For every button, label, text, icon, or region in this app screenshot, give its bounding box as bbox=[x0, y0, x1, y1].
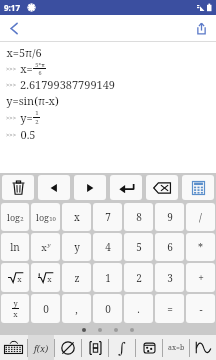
button[interactable]: y bbox=[62, 233, 91, 261]
button[interactable]: 3 bbox=[155, 263, 184, 292]
button[interactable]: x bbox=[31, 233, 60, 261]
staticText: . bbox=[137, 302, 140, 316]
staticText: ∫ bbox=[118, 339, 126, 356]
button[interactable]: 9 bbox=[155, 203, 184, 231]
staticText: 0.5 bbox=[20, 127, 36, 142]
staticText: >>> bbox=[6, 131, 17, 139]
button[interactable]: Integral bbox=[109, 335, 135, 360]
staticText: y bbox=[47, 241, 51, 249]
button[interactable]: 7 bbox=[93, 203, 122, 231]
button[interactable]: 0 bbox=[31, 294, 60, 323]
staticText: 9 bbox=[167, 210, 173, 224]
button[interactable]: Functions bbox=[28, 335, 54, 360]
button[interactable]: 4 bbox=[93, 233, 122, 261]
button[interactable]: 1 bbox=[93, 263, 122, 292]
staticText: = bbox=[167, 302, 173, 316]
staticText: - bbox=[199, 302, 203, 316]
button[interactable]: 6 bbox=[155, 233, 184, 261]
button[interactable]: x bbox=[31, 263, 60, 292]
staticText: 2 bbox=[35, 118, 39, 126]
staticText: x= bbox=[20, 61, 33, 76]
button[interactable]: , bbox=[62, 294, 91, 323]
staticText: f(x) bbox=[34, 342, 49, 354]
staticText: x bbox=[41, 241, 47, 254]
staticText: 7 bbox=[105, 210, 111, 224]
button[interactable]: Backspace bbox=[146, 175, 178, 200]
staticText: 1 bbox=[105, 271, 111, 285]
button[interactable]: Graph bbox=[190, 335, 216, 360]
button[interactable]: Keyboard bbox=[0, 335, 27, 360]
button[interactable]: Calculator bbox=[182, 175, 214, 200]
button[interactable]: / bbox=[186, 203, 215, 231]
staticText: x=5π/6 bbox=[6, 45, 42, 60]
staticText: y bbox=[13, 298, 18, 308]
button[interactable]: 2 bbox=[124, 263, 153, 292]
staticText: 6 bbox=[38, 69, 42, 76]
staticText: / bbox=[199, 210, 202, 224]
button[interactable]: Back bbox=[8, 22, 21, 35]
button[interactable]: = bbox=[155, 294, 184, 323]
staticText: 3 bbox=[167, 271, 173, 285]
staticText: 6 bbox=[167, 240, 173, 254]
staticText: ln bbox=[10, 240, 20, 254]
button[interactable]: Move right bbox=[74, 175, 106, 200]
staticText: z bbox=[74, 271, 80, 285]
staticText: x bbox=[13, 309, 18, 319]
button[interactable]: . bbox=[124, 294, 153, 323]
staticText: log bbox=[36, 211, 49, 223]
staticText: 2 bbox=[20, 215, 24, 223]
staticText: 9:17 bbox=[4, 2, 20, 13]
staticText: ax=b bbox=[168, 343, 185, 353]
staticText: y=sin(π-x) bbox=[6, 93, 59, 108]
button[interactable]: Share bbox=[195, 22, 208, 35]
button[interactable]: x bbox=[1, 263, 29, 292]
staticText: 5 bbox=[136, 240, 142, 254]
button[interactable]: y bbox=[1, 294, 29, 323]
button[interactable]: + bbox=[186, 263, 215, 292]
button[interactable]: Empty set bbox=[55, 335, 81, 360]
staticText: 5*π bbox=[35, 61, 45, 68]
staticText: y bbox=[74, 240, 80, 254]
button[interactable]: Equation bbox=[163, 335, 189, 360]
staticText: x bbox=[47, 274, 52, 284]
other: Enter bbox=[118, 182, 135, 194]
staticText: 2 bbox=[136, 271, 142, 285]
other: Backspace bbox=[153, 182, 171, 194]
staticText: x bbox=[74, 210, 80, 224]
button[interactable]: Clear bbox=[2, 175, 34, 200]
button[interactable]: ln bbox=[1, 233, 29, 261]
other: Move left bbox=[48, 182, 60, 194]
button[interactable]: Matrix bbox=[82, 335, 108, 360]
staticText: >>> bbox=[6, 81, 17, 89]
staticText: * bbox=[198, 240, 203, 254]
button[interactable]: log bbox=[1, 203, 29, 231]
button[interactable]: z bbox=[62, 263, 91, 292]
staticText: log bbox=[7, 211, 20, 223]
other: Calculator bbox=[192, 181, 205, 195]
staticText: >>> bbox=[6, 65, 17, 73]
staticText: 10 bbox=[49, 215, 56, 223]
other: Move right bbox=[84, 182, 96, 194]
other: Clear bbox=[12, 180, 25, 195]
button[interactable]: Probability bbox=[136, 335, 162, 360]
button[interactable]: Enter bbox=[110, 175, 142, 200]
staticText: 0 bbox=[105, 302, 111, 316]
staticText: 4 bbox=[105, 240, 111, 254]
button[interactable]: log bbox=[31, 203, 60, 231]
button[interactable]: 5 bbox=[124, 233, 153, 261]
staticText: y= bbox=[20, 110, 33, 125]
button[interactable]: - bbox=[186, 294, 215, 323]
staticText: , bbox=[75, 302, 78, 316]
staticText: 8 bbox=[136, 210, 142, 224]
other: Settings bbox=[27, 3, 36, 12]
staticText: 2.61799387799149 bbox=[20, 77, 115, 92]
button[interactable]: * bbox=[186, 233, 215, 261]
staticText: + bbox=[198, 271, 204, 285]
button[interactable]: 0 bbox=[93, 294, 122, 323]
staticText: x bbox=[17, 274, 22, 284]
staticText: >>> bbox=[6, 114, 17, 122]
button[interactable]: 8 bbox=[124, 203, 153, 231]
button[interactable]: x bbox=[62, 203, 91, 231]
button[interactable]: Move left bbox=[38, 175, 70, 200]
staticText: 0 bbox=[43, 302, 49, 316]
